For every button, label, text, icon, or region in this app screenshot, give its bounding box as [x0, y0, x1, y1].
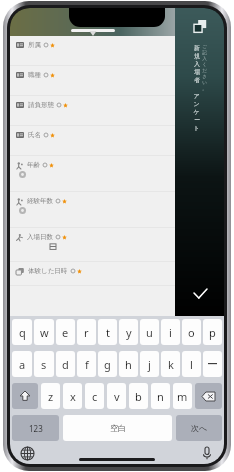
button[interactable]: z — [41, 383, 60, 409]
staticText: y — [126, 325, 132, 340]
staticText: ケ — [193, 108, 200, 116]
button[interactable]: w — [34, 319, 54, 345]
staticText: ー — [194, 116, 200, 124]
button[interactable]: 体験した日時 — [10, 262, 175, 286]
staticText: 入 — [202, 56, 207, 62]
staticText: t — [106, 325, 110, 340]
button[interactable]: Confirm — [187, 280, 213, 306]
button[interactable]: d — [56, 351, 75, 377]
staticText: 職種 — [28, 71, 41, 79]
staticText: さ — [202, 74, 207, 80]
staticText: い — [202, 80, 207, 86]
staticText: d — [62, 357, 69, 372]
button[interactable]: Dictation — [198, 444, 216, 462]
button[interactable]: e — [56, 319, 75, 345]
staticText: 請負形態 — [28, 101, 54, 109]
button[interactable]: 経験年数 — [10, 192, 175, 228]
staticText: b — [135, 389, 142, 404]
button[interactable]: 請負形態 — [10, 96, 175, 126]
button[interactable]: 空白 — [63, 415, 172, 441]
button[interactable]: ー — [203, 351, 222, 377]
staticText: 氏名 — [28, 131, 41, 139]
staticText: l — [190, 357, 193, 372]
button[interactable]: c — [85, 383, 104, 409]
button[interactable]: t — [98, 319, 117, 345]
button[interactable]: 職種 — [10, 66, 175, 96]
button[interactable]: 入場日数 — [10, 228, 175, 262]
button[interactable]: 氏名 — [10, 126, 175, 156]
button[interactable]: g — [98, 351, 117, 377]
staticText: i — [169, 325, 172, 340]
staticText: g — [104, 357, 111, 372]
button[interactable]: k — [161, 351, 180, 377]
staticText: 場 — [194, 68, 200, 76]
staticText: 空白 — [110, 423, 126, 433]
staticText: x — [70, 389, 76, 404]
staticText: c — [92, 389, 98, 404]
staticText: ー — [207, 357, 218, 371]
staticText: e — [62, 325, 69, 340]
staticText: 。 — [202, 86, 207, 92]
staticText: 経験年数 — [27, 197, 53, 205]
button[interactable]: p — [203, 319, 222, 345]
staticText: n — [157, 389, 164, 404]
button[interactable]: 123 — [12, 415, 59, 441]
staticText: だ — [202, 68, 207, 74]
staticText: 入場日数 — [27, 233, 53, 241]
staticText: ご — [202, 44, 207, 50]
staticText: ア — [193, 92, 200, 100]
staticText: w — [40, 325, 49, 340]
button[interactable]: n — [151, 383, 170, 409]
button[interactable]: Copy — [189, 15, 211, 37]
staticText: k — [168, 357, 174, 372]
button[interactable]: a — [12, 351, 32, 377]
button[interactable]: u — [140, 319, 159, 345]
button[interactable]: r — [77, 319, 96, 345]
staticText: 所属 — [28, 41, 41, 49]
staticText: 規 — [194, 52, 200, 60]
button[interactable]: Change keyboard — [18, 444, 36, 462]
staticText: く — [202, 62, 207, 68]
staticText: z — [48, 389, 54, 404]
staticText: 記 — [202, 50, 207, 56]
staticText: 者 — [194, 76, 200, 84]
button[interactable]: 年齢 — [10, 156, 175, 192]
button[interactable]: b — [129, 383, 148, 409]
button[interactable]: s — [34, 351, 54, 377]
button[interactable]: j — [140, 351, 159, 377]
staticText: p — [209, 325, 216, 340]
button[interactable]: 所属 — [10, 36, 175, 66]
staticText: f — [85, 357, 89, 372]
button[interactable]: l — [182, 351, 201, 377]
staticText: h — [125, 357, 132, 372]
button[interactable]: h — [119, 351, 138, 377]
staticText: u — [146, 325, 153, 340]
staticText: o — [188, 325, 195, 340]
staticText: q — [19, 325, 26, 340]
button[interactable]: v — [107, 383, 126, 409]
button[interactable]: i — [161, 319, 180, 345]
staticText: j — [148, 357, 151, 372]
button[interactable]: y — [119, 319, 138, 345]
button[interactable]: Key — [12, 383, 38, 409]
staticText: 年齢 — [27, 161, 40, 169]
staticText: 123 — [29, 423, 43, 434]
staticText: 体験した日時 — [28, 267, 68, 275]
staticText: s — [41, 357, 47, 372]
staticText: a — [19, 357, 26, 372]
staticText: v — [114, 389, 120, 404]
staticText: ン — [193, 100, 200, 108]
button[interactable]: 次へ — [176, 415, 222, 441]
button[interactable]: o — [182, 319, 201, 345]
staticText: 入 — [194, 60, 200, 68]
button[interactable]: Key — [195, 383, 222, 409]
button[interactable]: q — [12, 319, 32, 345]
staticText: 新 — [194, 44, 200, 52]
staticText: r — [84, 325, 89, 340]
button[interactable]: f — [77, 351, 96, 377]
staticText: ト — [193, 124, 200, 132]
button[interactable]: x — [63, 383, 82, 409]
staticText: 次へ — [191, 423, 208, 433]
button[interactable]: m — [173, 383, 192, 409]
